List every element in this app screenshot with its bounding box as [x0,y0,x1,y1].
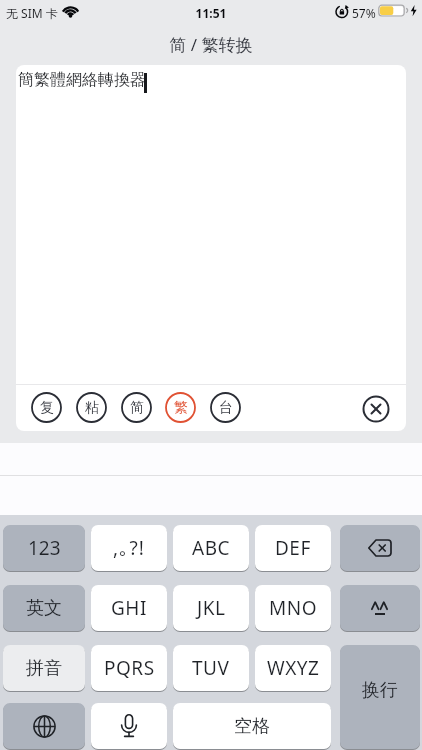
button[interactable]: 复 [30,391,63,424]
staticText: 简 [130,399,144,417]
button[interactable]: TUV [173,645,249,691]
staticText: TUV [192,655,230,681]
button[interactable]: PQRS [91,645,167,691]
staticText: ,｡?! [113,535,145,561]
button[interactable]: WXYZ [255,645,331,691]
staticText: 换行 [362,679,398,702]
button[interactable]: ABC [173,525,249,571]
staticText: WXYZ [267,655,320,681]
staticText: 无 SIM 卡 [6,5,58,21]
staticText: MNO [269,595,318,621]
button[interactable]: 粘 [75,391,108,424]
staticText: ABC [192,535,230,561]
staticText: 英文 [26,597,62,620]
staticText: 11:51 [0,5,422,21]
button[interactable]: DEF [255,525,331,571]
staticText: 57% [352,5,376,21]
button[interactable] [340,585,420,631]
button[interactable]: 换行 [340,645,420,749]
staticText: 复 [40,399,54,417]
button[interactable]: 簡繁體網絡轉換器 [16,65,406,431]
button[interactable] [91,703,167,749]
button[interactable]: 台 [209,391,242,424]
staticText: GHI [111,595,147,621]
button[interactable]: 拼音 [3,645,85,691]
staticText: 繁 [174,399,188,417]
staticText: 简 / 繁转换 [0,33,422,56]
staticText: 123 [28,535,61,561]
button[interactable]: 空格 [173,703,331,749]
staticText: 簡繁體網絡轉換器 [18,70,146,90]
button[interactable]: 简 [120,391,153,424]
staticText: PQRS [104,655,155,681]
button[interactable] [340,525,420,571]
button[interactable]: MNO [255,585,331,631]
button[interactable]: 繁 [164,391,197,424]
staticText: 台 [219,399,233,417]
button[interactable] [361,394,391,424]
button[interactable]: 123 [3,525,85,571]
staticText: JKL [197,595,226,621]
button[interactable]: 英文 [3,585,85,631]
staticText: 空格 [234,715,270,738]
button[interactable]: JKL [173,585,249,631]
staticText: 拼音 [26,657,62,680]
staticText: DEF [275,535,311,561]
button[interactable] [3,703,85,749]
staticText: 粘 [85,399,99,417]
button[interactable]: ,｡?! [91,525,167,571]
button[interactable]: GHI [91,585,167,631]
